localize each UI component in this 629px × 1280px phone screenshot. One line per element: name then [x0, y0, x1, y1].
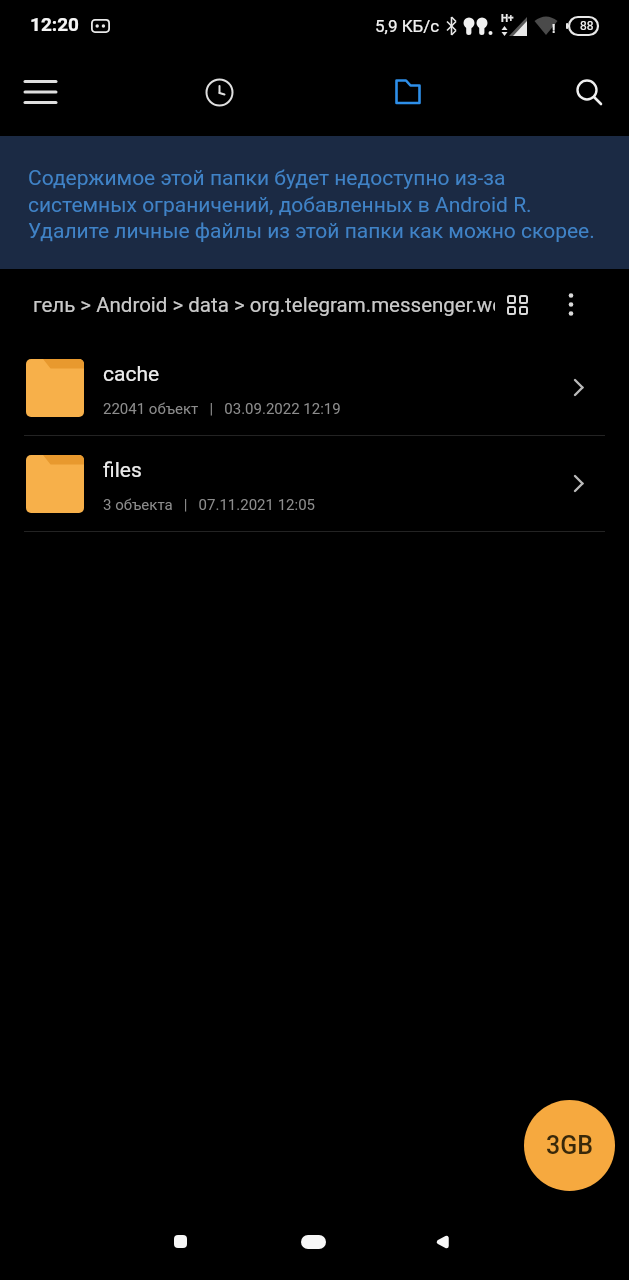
button[interactable] — [14, 66, 66, 118]
button[interactable] — [416, 1215, 469, 1268]
button[interactable] — [382, 65, 434, 117]
button[interactable] — [496, 283, 539, 326]
button[interactable] — [549, 283, 592, 326]
staticText: 3GB — [546, 1131, 594, 1160]
button[interactable]: гель > Android > data > org.telegram.mes… — [33, 269, 495, 340]
staticText: Содержимое этой папки будет недоступно и… — [28, 166, 595, 243]
staticText: 88 — [580, 19, 594, 33]
staticText: files — [103, 458, 142, 483]
staticText: cache — [103, 362, 160, 387]
button[interactable] — [193, 66, 245, 118]
staticText: 22041 объект | 03.09.2022 12:19 — [103, 400, 341, 418]
button[interactable] — [154, 1215, 207, 1268]
button[interactable]: cache — [0, 340, 629, 435]
button[interactable] — [563, 66, 615, 118]
button[interactable]: files — [0, 436, 629, 531]
staticText: H+ — [501, 13, 514, 25]
staticText: 5,9 КБ/с — [375, 16, 440, 36]
staticText: гель > Android > data > org.telegram.mes… — [33, 293, 495, 317]
button[interactable]: 3GB — [524, 1100, 615, 1191]
button[interactable] — [287, 1215, 340, 1268]
staticText: 3 объекта | 07.11.2021 12:05 — [103, 496, 316, 514]
staticText: 12:20 — [30, 13, 79, 35]
staticText: ! — [552, 22, 556, 36]
